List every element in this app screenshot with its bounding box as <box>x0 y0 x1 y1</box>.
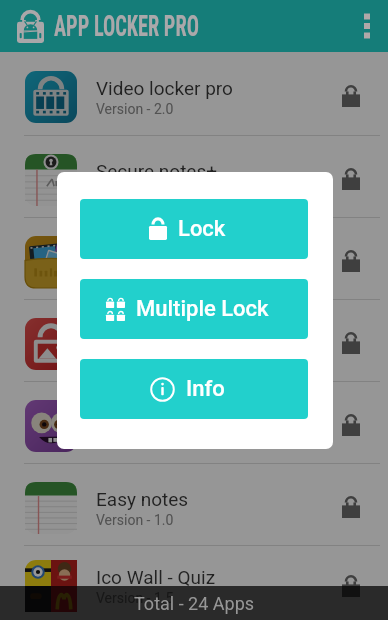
button[interactable]: Easy notes <box>0 464 388 546</box>
button[interactable]: Photo locker <box>0 300 388 382</box>
staticText: Multiple Lock <box>136 296 269 322</box>
button[interactable]: More options <box>342 3 388 49</box>
staticText: Secure notes+ <box>96 160 218 182</box>
button[interactable]: Ultimate gallery <box>0 218 388 300</box>
staticText: Version - 1.0 <box>96 512 174 528</box>
button[interactable]: Info <box>80 359 308 419</box>
staticText: Version - 1.2 <box>96 184 174 200</box>
staticText: Easy notes <box>96 488 189 510</box>
button[interactable]: Ico Wall - Quiz <box>0 546 388 620</box>
staticText: Version - 1.5 <box>96 590 174 606</box>
button[interactable]: Multiple Lock <box>80 279 308 339</box>
button[interactable]: Video locker pro <box>0 52 388 136</box>
staticText: Version - 2.0 <box>96 101 174 117</box>
staticText: APP LOCKER PRO <box>54 9 199 43</box>
staticText: Video locker pro <box>96 77 233 99</box>
staticText: Ico Wall - Quiz <box>96 566 216 588</box>
staticText: Lock <box>178 216 226 242</box>
staticText: Info <box>186 376 225 402</box>
staticText: Photo locker <box>96 324 203 346</box>
staticText: Version - 3.1 <box>96 266 174 282</box>
staticText: Ultimate gallery <box>96 242 228 264</box>
button[interactable]: Lock <box>80 199 308 259</box>
button[interactable]: Monster <box>0 382 388 464</box>
staticText: Version - 2.4 <box>96 348 174 364</box>
staticText: Monster <box>96 406 167 428</box>
staticText: Total - 24 Apps <box>134 593 255 614</box>
button[interactable]: Secure notes+ <box>0 136 388 218</box>
